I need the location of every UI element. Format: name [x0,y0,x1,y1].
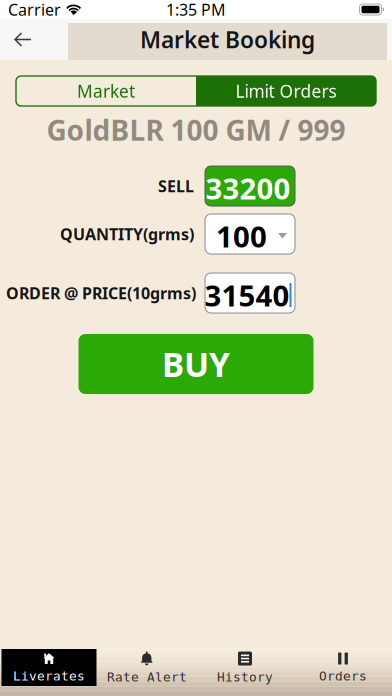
button[interactable]: Market [16,76,196,106]
staticText: History [217,670,273,684]
staticText: Carrier [8,0,61,20]
staticText: Market Booking [140,24,315,54]
staticText: Rate Alert [107,670,187,684]
button[interactable]: Liverates [0,648,98,686]
button[interactable]: Back [0,19,46,59]
button[interactable]: History [196,648,294,686]
staticText: QUANTITY(grms) [60,223,194,245]
staticText: GoldBLR 100 GM / 999 [46,111,345,149]
staticText: Limit Orders [235,79,336,102]
staticText: Orders [319,669,367,683]
staticText: 100 [216,216,267,255]
staticText: 31540 [204,275,289,314]
button[interactable]: Orders [294,648,392,686]
staticText: 33200 [205,168,290,207]
staticText: BUY [162,342,230,386]
staticText: Market [77,79,135,102]
staticText: SELL [158,175,194,197]
button[interactable]: Rate Alert [98,648,196,686]
button[interactable]: Limit Orders [196,76,376,106]
button[interactable]: BUY [78,334,313,394]
staticText: ORDER @ PRICE(10grms) [6,282,196,304]
staticText: 1:35 PM [166,0,226,20]
staticText: Liverates [13,669,85,683]
